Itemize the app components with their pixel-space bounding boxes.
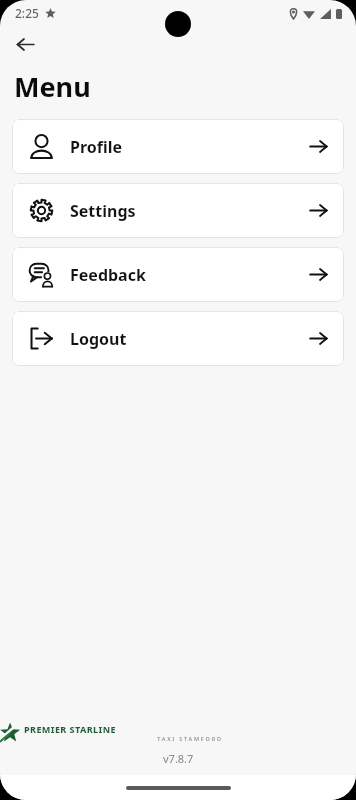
button[interactable]: Back bbox=[6, 26, 44, 62]
staticText: 2:25 bbox=[15, 5, 39, 21]
button[interactable]: Feedback bbox=[12, 247, 344, 302]
staticText: Settings bbox=[70, 200, 136, 222]
button[interactable]: Profile bbox=[12, 119, 344, 174]
staticText: Logout bbox=[70, 328, 127, 350]
button[interactable]: Settings bbox=[12, 183, 344, 238]
staticText: v7.8.7 bbox=[163, 751, 194, 766]
staticText: TAXI STAMFORD bbox=[24, 735, 356, 742]
staticText: Menu bbox=[14, 68, 91, 105]
button[interactable]: Logout bbox=[12, 311, 344, 366]
staticText: Profile bbox=[70, 136, 123, 158]
staticText: Feedback bbox=[70, 264, 146, 286]
staticText: PREMIER STARLINE bbox=[24, 723, 116, 735]
